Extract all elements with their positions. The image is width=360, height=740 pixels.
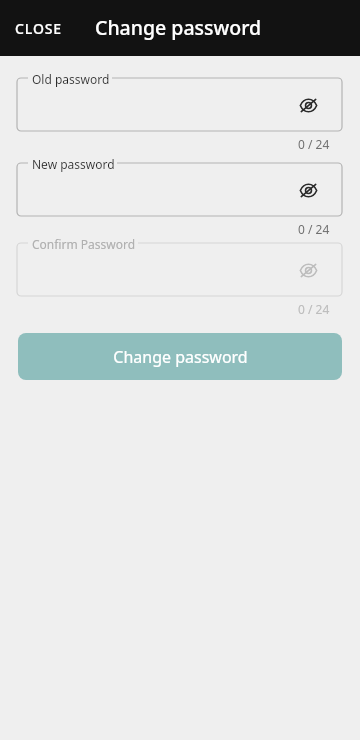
button[interactable]: Show password: [17, 163, 342, 216]
staticText: Old password: [32, 71, 110, 87]
button[interactable]: Show password: [17, 78, 342, 131]
button[interactable]: Show password: [292, 89, 324, 121]
button[interactable]: Show password: [17, 243, 342, 296]
button[interactable]: Change password: [18, 333, 342, 380]
staticText: Change password: [95, 14, 262, 41]
button[interactable]: CLOSE: [6, 11, 72, 46]
button[interactable]: Show password: [292, 254, 324, 286]
staticText: CLOSE: [15, 19, 63, 38]
staticText: New password: [32, 156, 115, 172]
staticText: 0 / 24: [298, 221, 330, 237]
button[interactable]: Show password: [292, 174, 324, 206]
staticText: 0 / 24: [298, 301, 330, 317]
staticText: 0 / 24: [298, 136, 330, 152]
staticText: Change password: [113, 346, 248, 368]
staticText: Confirm Password: [32, 236, 136, 252]
